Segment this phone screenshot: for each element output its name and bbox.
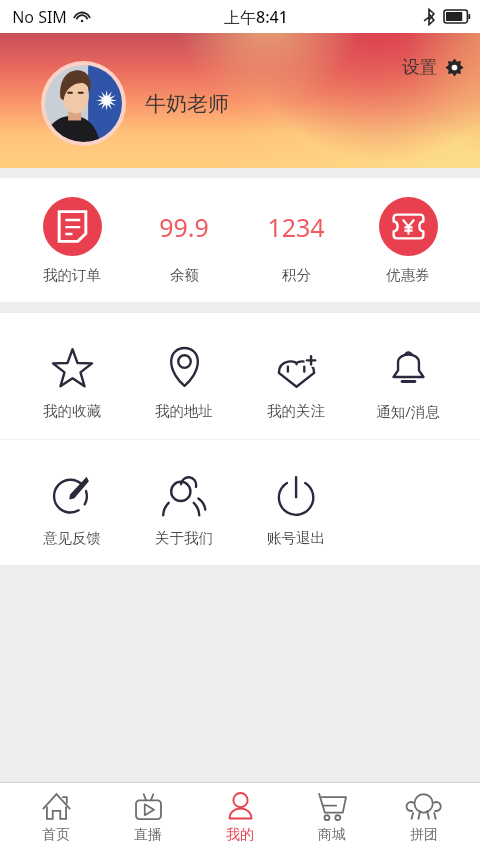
staticText: No SIM [12,6,67,28]
button[interactable]: 99.9 [128,178,240,302]
staticText: 关于我们 [155,529,213,547]
staticText: 1234 [267,210,325,244]
button[interactable]: 拼团 [378,783,470,853]
button[interactable]: 通知/消息 [352,313,464,439]
button[interactable]: 首页 [10,783,102,853]
button[interactable]: 我的订单 [16,178,128,302]
staticText: 余额 [170,266,199,284]
button[interactable]: 账号退出 [240,440,352,565]
staticText: 我的关注 [267,402,325,420]
button[interactable]: 关于我们 [128,440,240,565]
button[interactable]: 意见反馈 [16,440,128,565]
staticText: 牛奶老师 [145,91,229,117]
staticText: 我的订单 [43,266,101,284]
button[interactable]: 1234 [240,178,352,302]
staticText: 优惠券 [386,266,430,284]
staticText: 通知/消息 [376,401,440,421]
staticText: 我的收藏 [43,402,101,420]
button[interactable]: 我的收藏 [16,313,128,439]
staticText: 上午8:41 [224,6,288,28]
button[interactable]: 商城 [286,783,378,853]
button[interactable]: 直播 [102,783,194,853]
button[interactable]: 我的 [194,783,286,853]
staticText: 设置 [402,56,437,78]
button[interactable]: 我的关注 [240,313,352,439]
button[interactable]: 设置 [398,52,468,82]
staticText: 拼团 [410,826,438,844]
staticText: 积分 [282,266,311,284]
staticText: 我的地址 [155,402,213,420]
staticText: 商城 [318,826,346,844]
button[interactable]: 优惠券 [352,178,464,302]
staticText: 首页 [42,826,70,844]
button[interactable]: 我的地址 [128,313,240,439]
staticText: 我的 [226,826,254,844]
staticText: 账号退出 [267,529,325,547]
staticText: 意见反馈 [43,529,101,547]
staticText: 99.9 [159,210,209,244]
staticText: 直播 [134,826,162,844]
